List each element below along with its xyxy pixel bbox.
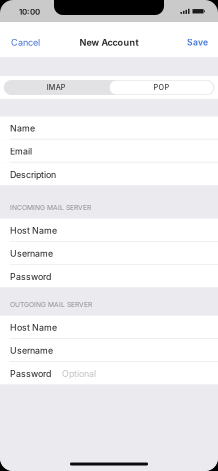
button[interactable]: Host Name <box>0 219 218 242</box>
staticText: OUTGOING MAIL SERVER <box>10 301 92 309</box>
staticText: Description <box>10 169 56 180</box>
staticText: Optional <box>62 368 96 379</box>
staticText: Email <box>10 146 32 157</box>
button[interactable]: Save <box>179 22 218 57</box>
staticText: Name <box>10 123 35 134</box>
staticText: New Account <box>79 37 138 48</box>
button[interactable]: Name <box>0 116 218 139</box>
button[interactable]: Username <box>0 242 218 265</box>
staticText: Host Name <box>10 225 57 236</box>
staticText: IMAP <box>47 83 66 92</box>
staticText: Username <box>10 345 53 356</box>
button[interactable]: Description <box>0 162 218 185</box>
staticText: 10:00 <box>19 7 40 17</box>
staticText: Password <box>10 368 51 379</box>
button[interactable]: Password <box>0 265 218 288</box>
button[interactable]: Username <box>0 339 218 362</box>
staticText: Username <box>10 248 53 259</box>
button[interactable]: Host Name <box>0 316 218 339</box>
button[interactable]: Cancel <box>0 22 48 57</box>
button[interactable]: Password <box>0 362 218 385</box>
staticText: Save <box>187 37 208 48</box>
button[interactable]: IMAP <box>4 80 109 95</box>
staticText: Password <box>10 271 51 282</box>
staticText: Host Name <box>10 322 57 333</box>
staticText: INCOMING MAIL SERVER <box>10 203 91 212</box>
staticText: Cancel <box>11 37 40 48</box>
button[interactable]: POP <box>109 80 214 95</box>
button[interactable]: Email <box>0 139 218 162</box>
staticText: POP <box>153 83 169 92</box>
